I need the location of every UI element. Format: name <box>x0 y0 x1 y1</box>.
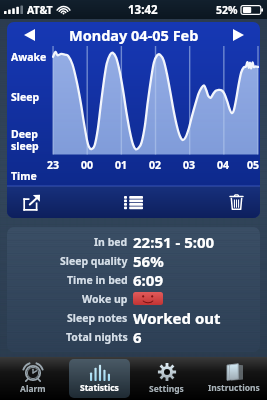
staticText: 23 <box>47 158 60 172</box>
button[interactable]: Total nights <box>7 327 260 346</box>
staticText: 13:42 <box>128 2 158 18</box>
staticText: 01 <box>115 158 128 172</box>
staticText: Time <box>11 169 37 183</box>
staticText: Sleep quality <box>60 254 128 268</box>
staticText: Time in bed <box>67 273 128 287</box>
staticText: 00 <box>81 158 94 172</box>
button[interactable]: Settings <box>136 359 197 398</box>
staticText: 6:09 <box>133 270 163 289</box>
button[interactable]: Alarm <box>3 359 63 398</box>
staticText: Sleep <box>11 90 40 104</box>
staticText: Deep sleep <box>11 127 39 153</box>
staticText: 6 <box>133 327 142 346</box>
button[interactable]: Sleep notes <box>7 308 260 327</box>
staticText: 04 <box>217 158 230 172</box>
staticText: Monday 04-05 Feb <box>69 25 199 45</box>
button[interactable]: Share <box>17 188 45 216</box>
staticText: Instructions <box>208 382 260 394</box>
staticText: 52% <box>216 3 238 17</box>
staticText: Total nights <box>66 330 128 344</box>
staticText: 56% <box>133 251 164 270</box>
staticText: Woke up <box>82 292 128 306</box>
button[interactable]: List view <box>118 187 148 217</box>
staticText: 05 <box>247 158 260 172</box>
button[interactable]: Next day <box>225 24 251 46</box>
button[interactable]: In bed <box>7 232 260 251</box>
button[interactable]: Time in bed <box>7 270 260 289</box>
staticText: Alarm <box>20 383 46 395</box>
staticText: In bed <box>94 235 128 249</box>
button[interactable]: Woke up <box>7 289 260 308</box>
staticText: 22:51 - 5:00 <box>133 232 215 251</box>
staticText: Sleep notes <box>67 311 128 325</box>
staticText: Statistics <box>80 382 119 394</box>
button[interactable]: Woke up mood <box>133 292 163 305</box>
staticText: Settings <box>149 383 184 395</box>
button[interactable]: Statistics <box>69 359 130 398</box>
staticText: 02 <box>149 158 162 172</box>
staticText: AT&T <box>27 3 53 17</box>
staticText: Awake <box>11 50 47 64</box>
button[interactable]: Previous day <box>16 24 42 46</box>
button[interactable]: Instructions <box>203 359 264 398</box>
button[interactable]: Sleep quality <box>7 251 260 270</box>
staticText: 03 <box>183 158 196 172</box>
staticText: Worked out <box>133 308 221 327</box>
button[interactable]: Delete <box>222 188 250 216</box>
